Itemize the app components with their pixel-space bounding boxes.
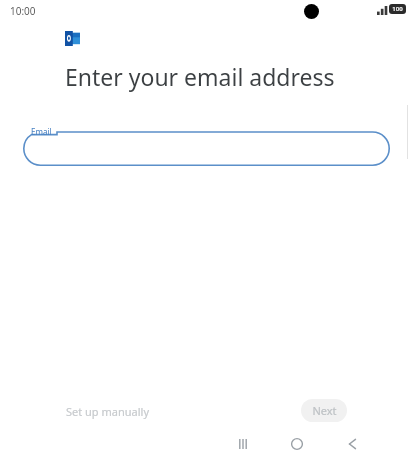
button[interactable]: Home [284,431,310,457]
staticText: 10:00 [10,4,36,18]
button[interactable]: Email [23,124,390,166]
button[interactable]: Next [301,399,347,422]
staticText: Set up manually [66,404,150,419]
staticText: Next [312,403,337,418]
button[interactable]: Back [339,431,365,457]
button[interactable]: Set up manually [58,399,158,424]
staticText: Email [31,126,52,137]
staticText: Enter your email address [65,61,335,92]
button[interactable]: Recents [230,431,256,457]
staticText: 100 [392,5,403,13]
